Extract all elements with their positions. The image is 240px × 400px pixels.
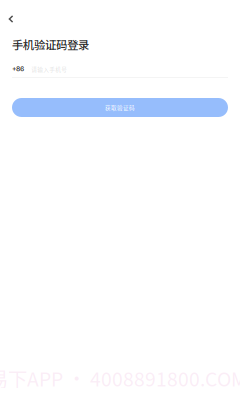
staticText: 请输入手机号 <box>31 65 67 73</box>
staticText: 易下APP · 4008891800.COM <box>0 364 240 392</box>
staticText: 获取验证码 <box>105 103 135 111</box>
staticText: 手机验证码登录 <box>12 36 89 52</box>
button[interactable]: +86 <box>12 64 228 78</box>
staticText: +86 <box>12 65 24 73</box>
button[interactable]: Back <box>0 8 30 30</box>
button[interactable]: 获取验证码 <box>12 98 228 117</box>
